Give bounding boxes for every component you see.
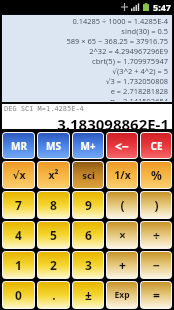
button[interactable]: =	[141, 282, 171, 308]
button[interactable]: 4	[3, 222, 34, 248]
button[interactable]: 6	[73, 222, 103, 248]
staticText: ×	[119, 227, 126, 243]
button[interactable]: 9	[73, 192, 103, 218]
staticText: 0	[15, 287, 22, 303]
button[interactable]: ×	[107, 222, 137, 248]
staticText: −	[153, 257, 160, 273]
button[interactable]: (	[107, 192, 137, 218]
button[interactable]: 7	[3, 192, 34, 218]
button[interactable]: 8	[38, 192, 69, 218]
staticText: MS	[46, 139, 61, 153]
staticText: 8	[50, 197, 57, 213]
staticText: CE	[150, 139, 163, 153]
staticText: 4	[15, 227, 22, 243]
staticText: M+	[80, 139, 96, 153]
button[interactable]: x²	[38, 162, 69, 188]
button[interactable]: %	[141, 162, 171, 188]
button[interactable]: ±	[73, 282, 103, 308]
staticText: Exp	[114, 289, 130, 301]
staticText: (	[120, 197, 125, 213]
button[interactable]: CE	[141, 133, 171, 158]
button[interactable]: 3	[73, 252, 103, 278]
button[interactable]: Exp	[107, 282, 137, 308]
button[interactable]: 0	[3, 282, 34, 308]
staticText: 589 × 65 − 368.25 = 37916.75	[6, 36, 168, 46]
button[interactable]: )	[141, 192, 171, 218]
staticText: 2	[50, 257, 57, 273]
staticText: cbrt(5) = 1.709975947	[6, 56, 168, 66]
staticText: e = 2.718281828	[6, 86, 168, 96]
staticText: ÷	[153, 227, 160, 243]
staticText: .	[52, 287, 56, 303]
button[interactable]: M+	[73, 133, 103, 158]
staticText: =	[153, 287, 160, 303]
button[interactable]: MS	[38, 133, 69, 158]
button[interactable]: −	[141, 252, 171, 278]
staticText: +	[119, 257, 126, 273]
staticText: √(3^2 + 4^2) = 5	[6, 66, 168, 76]
button[interactable]: Backspace	[107, 133, 137, 158]
staticText: √x	[12, 168, 26, 182]
staticText: π = 3.141592654	[6, 96, 168, 101]
staticText: sci	[82, 169, 95, 182]
staticText: 6	[85, 227, 92, 243]
staticText: 1	[15, 257, 22, 273]
button[interactable]: ÷	[141, 222, 171, 248]
staticText: ±	[85, 287, 92, 303]
button[interactable]: 2	[38, 252, 69, 278]
staticText: 0.14285 ÷ 1000 = 1.4285E-4	[6, 16, 168, 26]
staticText: <−	[115, 138, 129, 154]
button[interactable]: 1/x	[107, 162, 137, 188]
staticText: 9	[85, 197, 92, 213]
button[interactable]: .	[38, 282, 69, 308]
staticText: 3.183098862E-1	[2, 114, 169, 129]
staticText: 2^32 = 4.294967296E9	[6, 46, 168, 56]
staticText: 7	[15, 197, 22, 213]
staticText: x²	[48, 168, 59, 182]
staticText: 1/x	[114, 168, 131, 182]
staticText: sind(30) = 0.5	[6, 26, 168, 36]
button[interactable]: MR	[3, 133, 34, 158]
staticText: )	[154, 197, 159, 213]
staticText: MR	[11, 139, 27, 153]
staticText: %	[151, 167, 162, 183]
button[interactable]: √x	[3, 162, 34, 188]
button[interactable]: sci	[73, 162, 103, 188]
button[interactable]: 1	[3, 252, 34, 278]
staticText: 3	[85, 257, 92, 273]
button[interactable]: 5	[38, 222, 69, 248]
staticText: DEG SCI M=1.4285E-4	[4, 104, 84, 114]
staticText: 5:47	[153, 1, 171, 13]
button[interactable]: +	[107, 252, 137, 278]
staticText: 5	[50, 227, 57, 243]
staticText: √3 = 1.732050808	[6, 76, 168, 86]
